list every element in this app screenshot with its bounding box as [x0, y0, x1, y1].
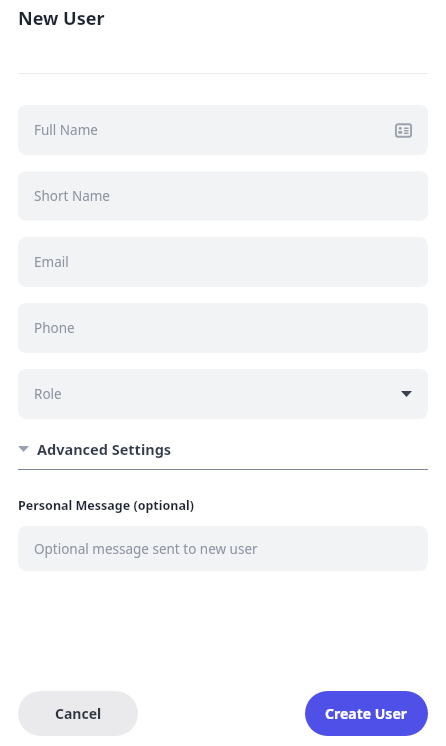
staticText: Short Name — [34, 187, 110, 205]
staticText: Optional message sent to new user — [34, 540, 258, 558]
button[interactable]: Create User — [305, 691, 428, 736]
button[interactable]: Full Name — [18, 105, 428, 155]
other: Open role menu — [401, 391, 412, 397]
staticText: Personal Message (optional) — [18, 497, 194, 514]
staticText: Role — [34, 385, 62, 403]
button[interactable]: Cancel — [18, 691, 138, 736]
button[interactable]: Short Name — [18, 171, 428, 221]
staticText: Create User — [325, 704, 408, 723]
staticText: Full Name — [34, 121, 98, 139]
staticText: Phone — [34, 319, 75, 337]
staticText: New User — [18, 6, 105, 31]
staticText: Advanced Settings — [37, 439, 172, 459]
button[interactable]: Role — [18, 369, 428, 419]
staticText: Cancel — [55, 704, 102, 723]
button[interactable]: Optional message sent to new user — [18, 526, 428, 571]
button[interactable]: Phone — [18, 303, 428, 353]
button[interactable]: Email — [18, 237, 428, 287]
button[interactable]: Advanced Settings — [18, 437, 428, 461]
staticText: Email — [34, 253, 69, 271]
other: Choose from contacts — [395, 122, 412, 139]
